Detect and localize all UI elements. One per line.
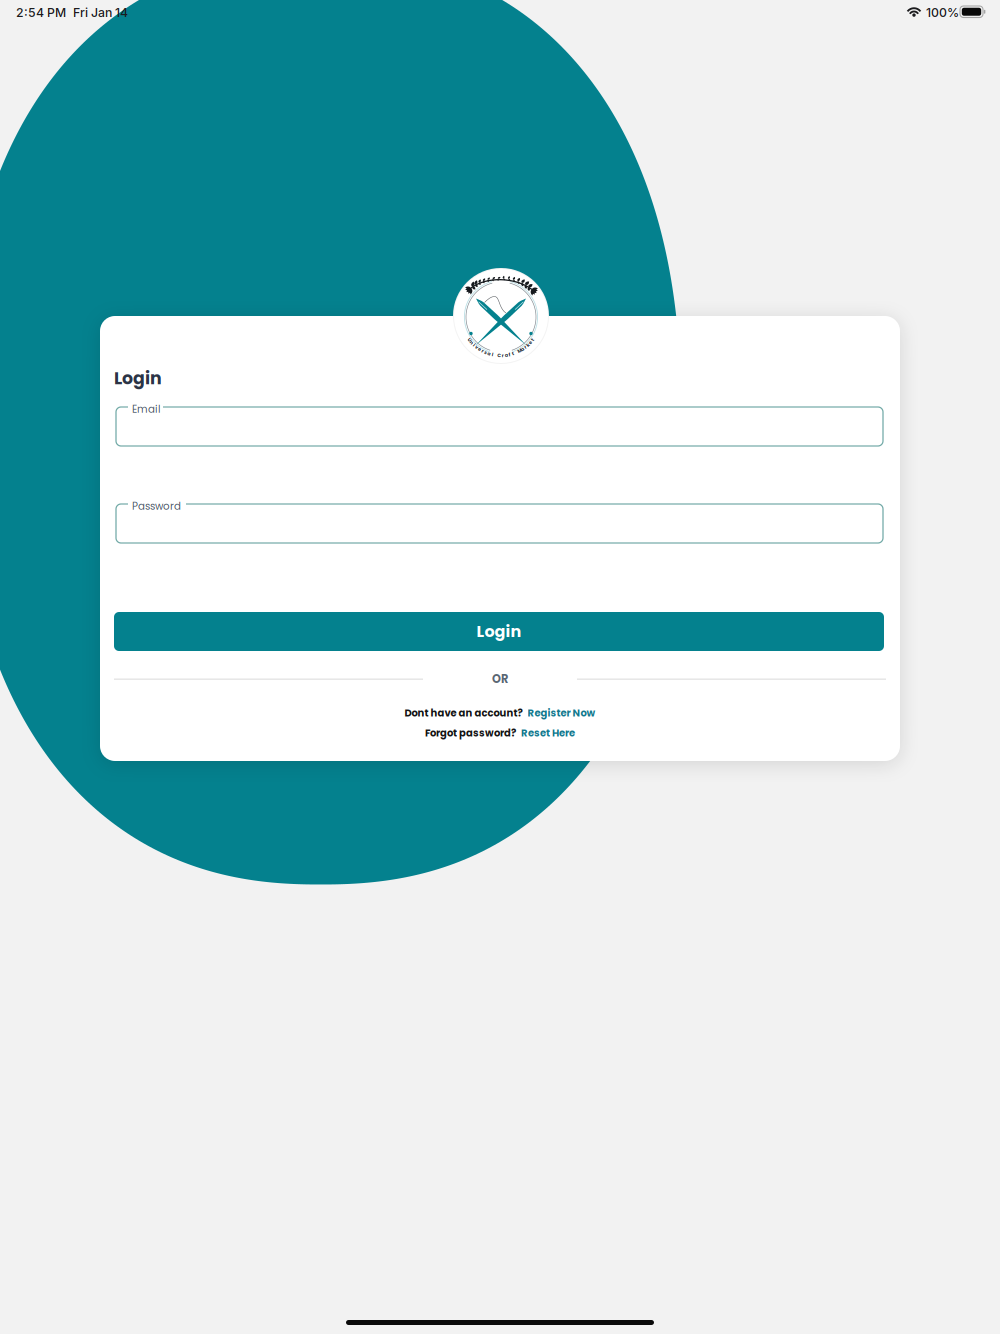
button[interactable]: Reset Here <box>521 726 575 740</box>
button[interactable]: Login <box>114 612 884 651</box>
staticText: a <box>505 352 508 358</box>
staticText: r <box>524 344 526 350</box>
staticText: t <box>532 336 534 343</box>
staticText: s <box>484 349 487 356</box>
staticText: M <box>517 348 521 354</box>
staticText: a <box>521 346 524 352</box>
staticText: Fri Jan 14 <box>73 5 128 20</box>
staticText <box>516 349 517 356</box>
staticText: i <box>474 341 475 348</box>
staticText: k <box>526 341 529 348</box>
staticText: Email <box>132 402 161 416</box>
staticText: l <box>492 351 493 358</box>
staticText: t <box>512 350 514 357</box>
staticText: v <box>475 344 478 350</box>
staticText: OR <box>492 671 508 687</box>
staticText: Login <box>114 366 162 390</box>
staticText: e <box>478 346 481 352</box>
staticText: Reset Here <box>521 726 575 740</box>
button[interactable]: Password <box>116 504 883 543</box>
staticText: Register Now <box>527 706 595 720</box>
staticText: 2:54 PM <box>16 5 66 20</box>
staticText: r <box>482 348 484 354</box>
staticText: U <box>468 336 471 343</box>
staticText: Forgot password? <box>425 726 516 740</box>
staticText: n <box>470 339 473 346</box>
staticText: a <box>487 350 490 357</box>
staticText: f <box>509 351 511 358</box>
button[interactable]: Register Now <box>527 706 595 720</box>
staticText: Dont have an account? <box>404 706 522 720</box>
button[interactable]: Email <box>116 407 883 446</box>
staticText: Login <box>476 620 521 643</box>
staticText: r <box>502 352 504 359</box>
staticText: e <box>529 339 532 346</box>
staticText: C <box>497 352 501 359</box>
staticText: Password <box>132 499 181 513</box>
staticText: 100% <box>926 5 959 20</box>
